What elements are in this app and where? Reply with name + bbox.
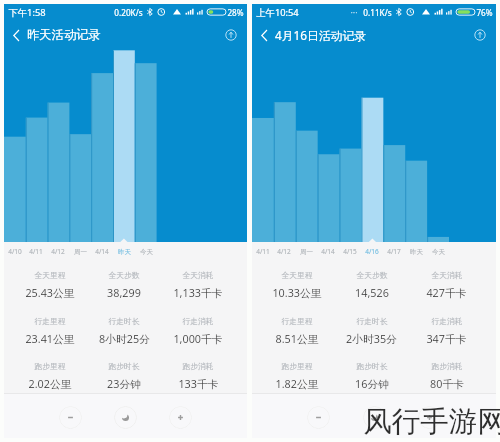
staticText: 全天步数: [356, 270, 388, 280]
staticText: 昨天: [118, 248, 131, 256]
staticText: 38,299: [107, 285, 141, 300]
button[interactable]: 今天: [135, 244, 157, 259]
staticText: 4/10: [8, 247, 22, 256]
staticText: 全天里程: [281, 270, 313, 280]
staticText: 4/11: [29, 247, 43, 256]
staticText: 23分钟: [107, 376, 141, 391]
staticText: 4/14: [95, 247, 109, 256]
staticText: ···: [350, 6, 358, 18]
staticText: 全天消耗: [431, 270, 463, 280]
staticText: 1.82公里: [275, 376, 319, 391]
staticText: 28%: [227, 7, 244, 18]
button[interactable]: Increase: [418, 406, 441, 429]
button[interactable]: 4/11: [25, 244, 47, 259]
staticText: 全天里程: [34, 270, 66, 280]
staticText: 0.11K/s: [363, 7, 392, 18]
staticText: 4/14: [321, 247, 335, 256]
staticText: 昨天活动记录: [27, 27, 101, 42]
staticText: 0.20K/s: [114, 7, 143, 18]
staticText: 4月16日活动记录: [275, 27, 367, 43]
staticText: 行走消耗: [182, 316, 214, 326]
button[interactable]: 4/17: [383, 244, 405, 259]
staticText: 跑步时长: [356, 361, 388, 371]
staticText: 10.33公里: [272, 285, 322, 300]
staticText: 4/11: [256, 247, 270, 256]
staticText: 23.41公里: [25, 331, 75, 346]
button[interactable]: Decrease: [307, 406, 330, 429]
button[interactable]: 4/14: [317, 244, 339, 259]
button[interactable]: 4/12: [47, 244, 69, 259]
staticText: 周一: [74, 248, 87, 256]
staticText: 跑步里程: [34, 361, 66, 371]
button[interactable]: 4/14: [91, 244, 113, 259]
button[interactable]: 昨天: [113, 244, 135, 259]
button[interactable]: 4/11: [252, 244, 273, 259]
button[interactable]: Share: [222, 26, 240, 44]
button[interactable]: Night mode: [114, 406, 137, 429]
staticText: 全天步数: [108, 270, 140, 280]
staticText: 行走消耗: [431, 316, 463, 326]
button[interactable]: 4/10: [4, 244, 25, 259]
staticText: 4/12: [51, 247, 65, 256]
staticText: 4/12: [277, 247, 291, 256]
staticText: 今天: [432, 248, 445, 256]
staticText: 8.51公里: [275, 331, 319, 346]
staticText: 跑步时长: [108, 361, 140, 371]
staticText: 周一: [300, 248, 313, 256]
staticText: 行走时长: [356, 316, 388, 326]
staticText: 行走里程: [34, 316, 66, 326]
staticText: 跑步消耗: [182, 361, 214, 371]
button[interactable]: 昨天: [405, 244, 427, 259]
staticText: 行走时长: [108, 316, 140, 326]
staticText: 1,000千卡: [173, 331, 223, 346]
staticText: 2小时35分: [346, 331, 397, 346]
staticText: 风行手游网: [363, 404, 500, 440]
button[interactable]: 4/16: [361, 244, 383, 259]
staticText: 427千卡: [426, 285, 467, 300]
button[interactable]: 4/15: [339, 244, 361, 259]
staticText: 跑步里程: [281, 361, 313, 371]
button[interactable]: Increase: [169, 406, 192, 429]
staticText: 76%: [476, 7, 493, 18]
staticText: 4/16: [365, 247, 379, 256]
staticText: 14,526: [355, 285, 389, 300]
staticText: 行走里程: [281, 316, 313, 326]
staticText: 133千卡: [178, 376, 219, 391]
staticText: 1,133千卡: [173, 285, 223, 300]
button[interactable]: 4/12: [273, 244, 295, 259]
staticText: 今天: [140, 248, 153, 256]
staticText: 2.02公里: [28, 376, 72, 391]
staticText: 16分钟: [355, 376, 389, 391]
staticText: 4/15: [343, 247, 357, 256]
staticText: 80千卡: [430, 376, 464, 391]
staticText: 全天消耗: [182, 270, 214, 280]
staticText: 25.43公里: [25, 285, 75, 300]
staticText: 347千卡: [426, 331, 467, 346]
button[interactable]: Decrease: [59, 406, 82, 429]
staticText: 昨天: [410, 248, 423, 256]
staticText: 8小时25分: [99, 331, 150, 346]
button[interactable]: Back: [256, 27, 272, 43]
staticText: 上午10:54: [256, 6, 299, 19]
staticText: 跑步消耗: [431, 361, 463, 371]
staticText: 4/17: [387, 247, 401, 256]
button[interactable]: 今天: [427, 244, 449, 259]
button[interactable]: 周一: [69, 244, 91, 259]
button[interactable]: Back: [8, 27, 24, 43]
staticText: 下午1:58: [8, 6, 46, 19]
button[interactable]: Share: [471, 26, 489, 44]
button[interactable]: Night mode: [363, 406, 386, 429]
button[interactable]: 周一: [295, 244, 317, 259]
